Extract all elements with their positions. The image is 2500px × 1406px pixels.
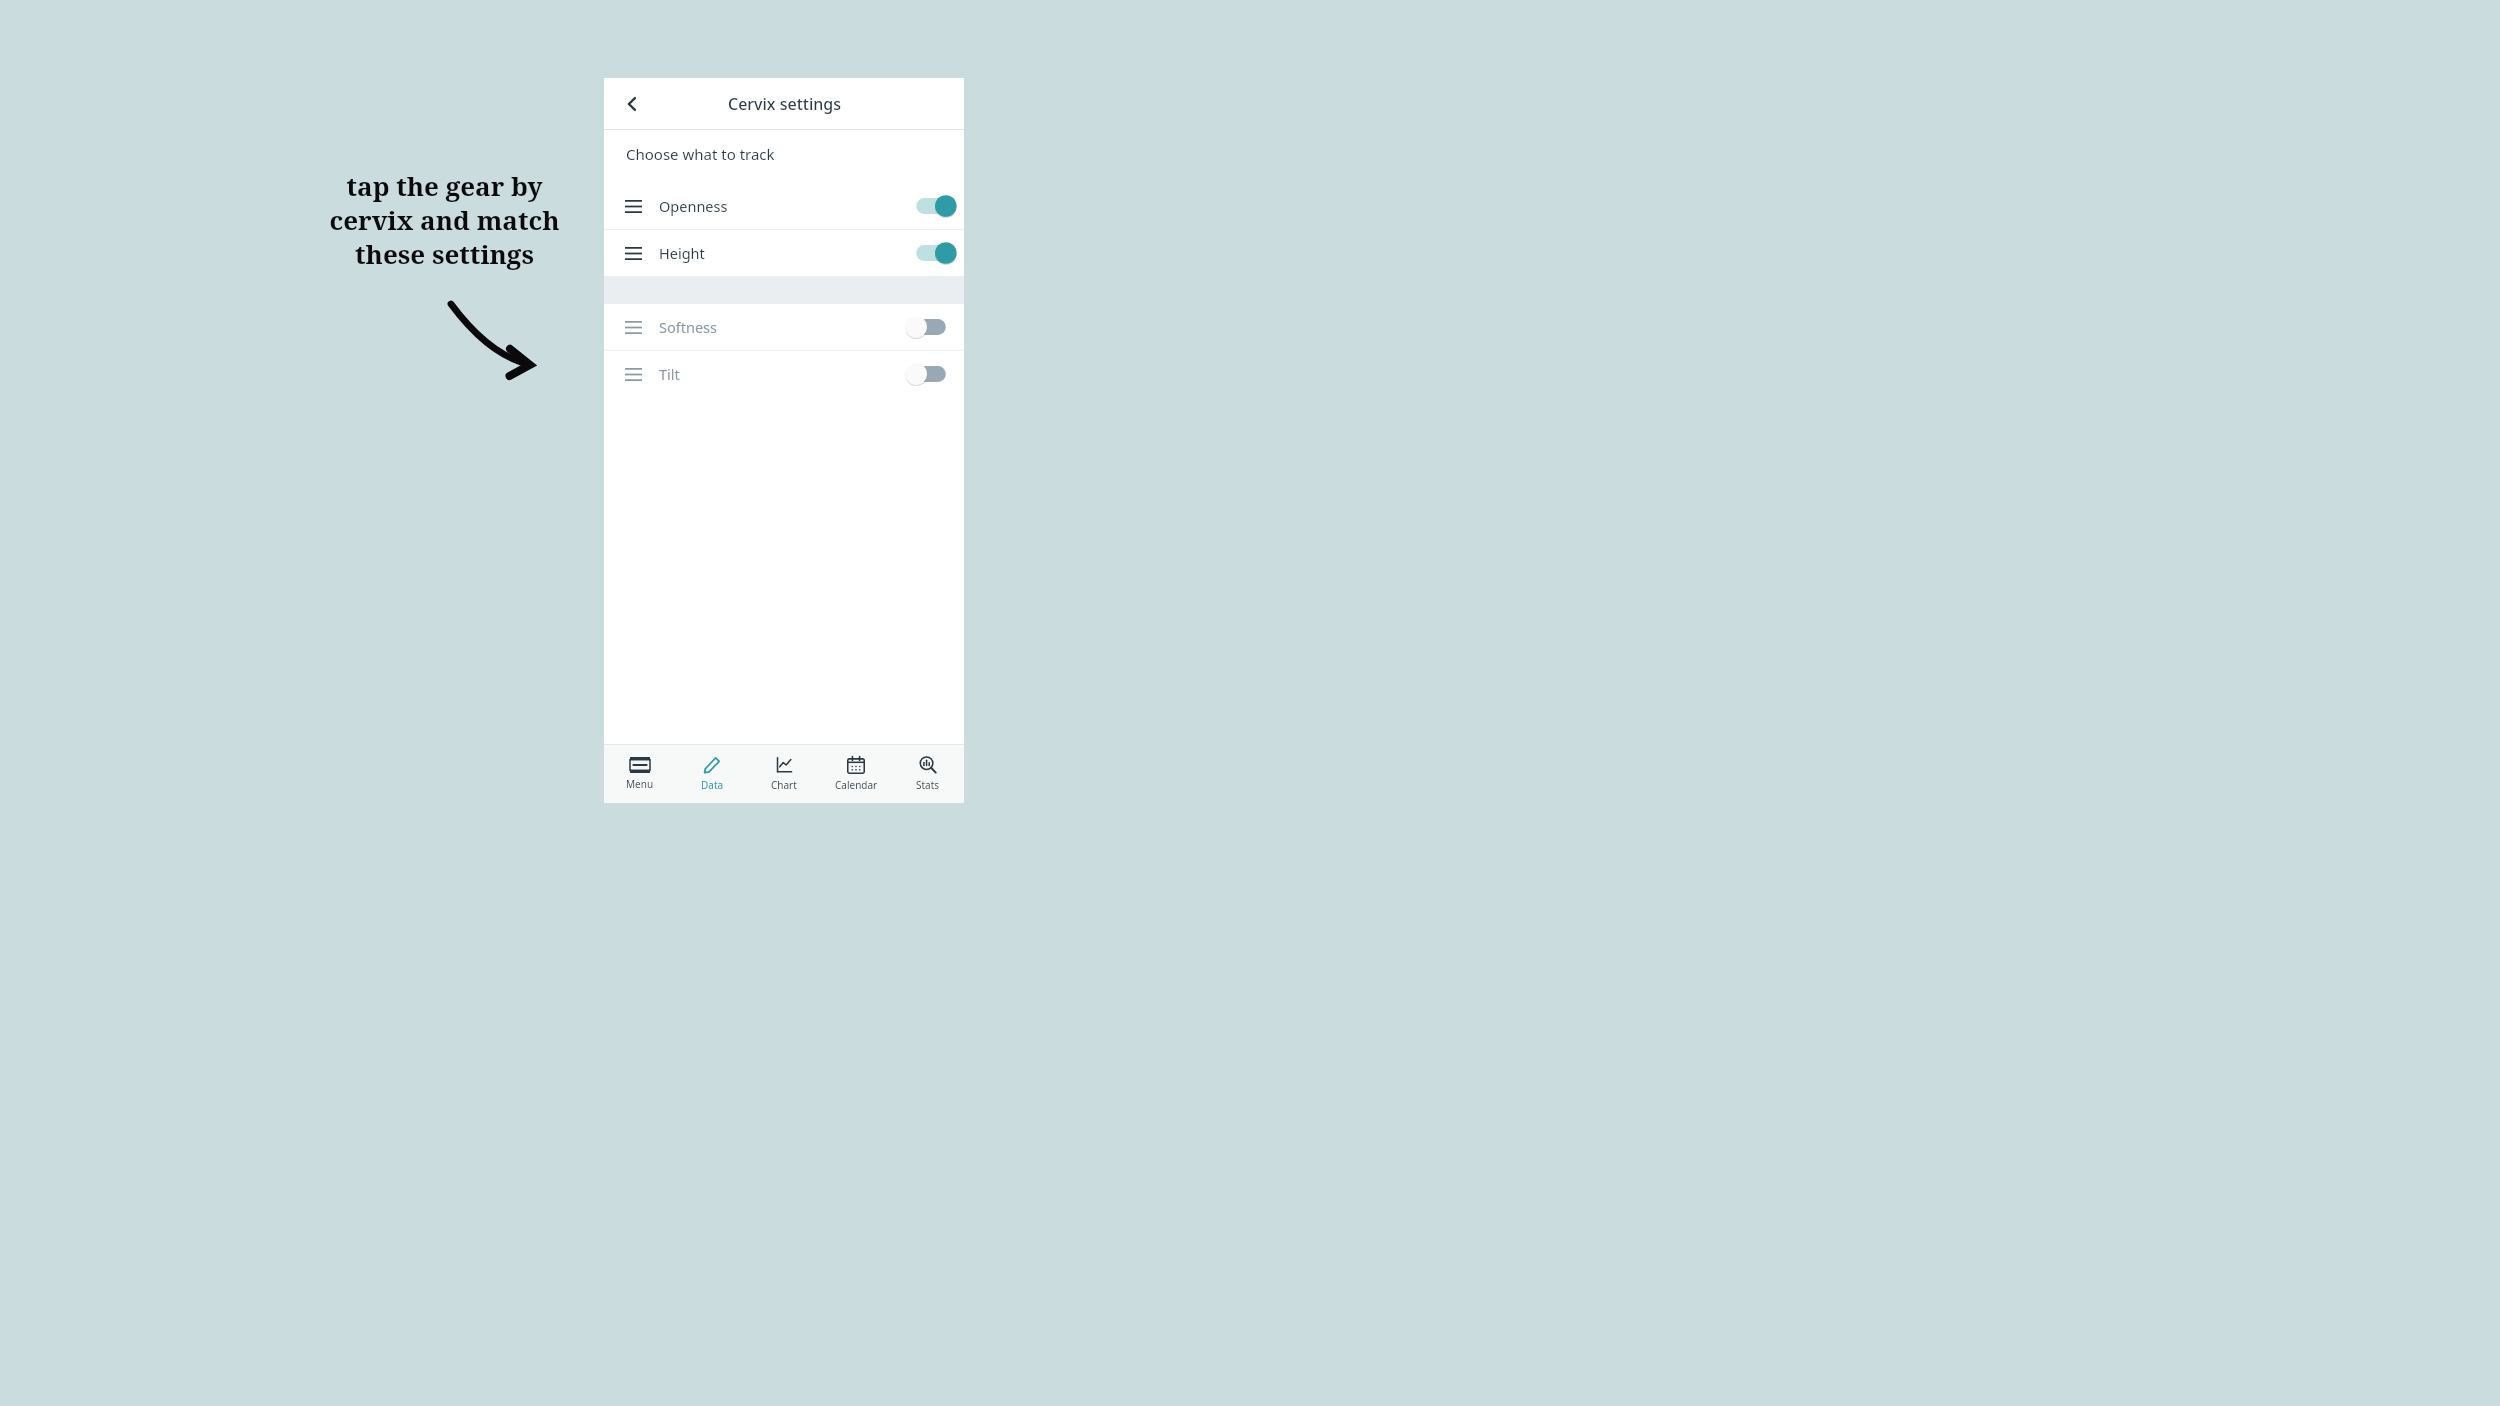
button[interactable]: Calendar [820, 745, 892, 803]
button[interactable]: Data [676, 745, 748, 803]
staticText: Stats [916, 778, 940, 792]
staticText: Softness [659, 317, 717, 337]
button[interactable]: Softness [604, 304, 964, 350]
staticText: Data [701, 778, 724, 792]
button[interactable]: Stats [892, 745, 964, 803]
staticText: Tilt [659, 364, 680, 384]
staticText: tap the gear by cervix and match these s… [329, 168, 560, 271]
staticText: Height [659, 243, 705, 263]
button[interactable]: Chart [748, 745, 820, 803]
button[interactable]: On [912, 241, 950, 265]
button[interactable]: Openness [604, 183, 964, 229]
button[interactable]: On [912, 194, 950, 218]
button[interactable]: Off [912, 315, 950, 339]
staticText: Menu [626, 777, 654, 791]
button[interactable]: Back [614, 86, 650, 122]
button[interactable]: Off [912, 362, 950, 386]
staticText: Choose what to track [626, 144, 775, 164]
staticText: Calendar [835, 778, 878, 792]
button[interactable]: Tilt [604, 351, 964, 397]
staticText: Openness [659, 196, 728, 216]
staticText: Cervix settings [728, 93, 841, 115]
staticText: Chart [771, 778, 797, 792]
button[interactable]: Menu [604, 745, 676, 803]
button[interactable]: Height [604, 230, 964, 276]
